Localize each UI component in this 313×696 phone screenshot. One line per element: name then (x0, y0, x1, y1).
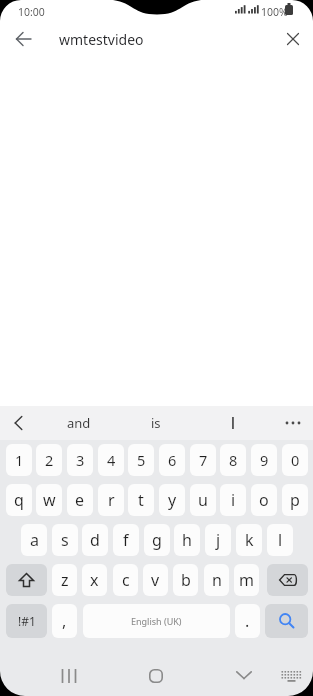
button[interactable]: e (67, 484, 93, 516)
staticText: . (245, 610, 250, 632)
staticText: 0 (291, 450, 300, 470)
button[interactable]: 4 (98, 444, 124, 476)
button[interactable]: 0 (282, 444, 308, 476)
button[interactable] (281, 671, 302, 683)
button[interactable]: 5 (128, 444, 154, 476)
staticText: 2 (45, 450, 54, 470)
staticText: 4 (107, 450, 116, 470)
button[interactable]: i (220, 484, 246, 516)
staticText: p (290, 489, 300, 511)
staticText: y (168, 489, 177, 511)
button[interactable]: o (251, 484, 277, 516)
staticText: q (14, 489, 24, 511)
button[interactable]: p (282, 484, 308, 516)
staticText: s (61, 529, 69, 551)
button[interactable]: j (205, 524, 231, 556)
staticText: w (43, 489, 56, 511)
button[interactable]: 2 (36, 444, 62, 476)
staticText: 8 (229, 450, 238, 470)
staticText: o (259, 489, 269, 511)
button[interactable]: a (21, 524, 47, 556)
staticText: x (90, 569, 99, 591)
button[interactable]: l (267, 524, 293, 556)
button[interactable]: h (174, 524, 200, 556)
staticText: 9 (260, 450, 269, 470)
button[interactable]: n (204, 564, 229, 596)
staticText: u (198, 489, 208, 511)
staticText: c (122, 569, 130, 591)
staticText: z (61, 569, 69, 591)
staticText: 1 (15, 450, 24, 470)
button[interactable]: wmtestvideo (0, 22, 313, 56)
button[interactable]: is (117, 406, 194, 440)
button[interactable]: d (82, 524, 108, 556)
button[interactable]: v (143, 564, 168, 596)
staticText: i (231, 489, 236, 511)
button[interactable]: q (6, 484, 32, 516)
staticText: a (30, 529, 39, 551)
staticText: 7 (199, 450, 208, 470)
staticText: is (151, 414, 161, 432)
staticText: j (216, 529, 221, 551)
staticText: 100% (261, 5, 288, 19)
button[interactable]: . (235, 604, 260, 638)
staticText: English (UK) (131, 615, 182, 627)
button[interactable]: 9 (251, 444, 277, 476)
button[interactable] (285, 420, 301, 426)
button[interactable]: , (52, 604, 77, 638)
button[interactable]: z (52, 564, 77, 596)
staticText: t (138, 489, 144, 511)
button[interactable]: c (113, 564, 138, 596)
button[interactable]: t (128, 484, 154, 516)
button[interactable] (287, 33, 299, 45)
button[interactable]: s (52, 524, 78, 556)
button[interactable]: w (36, 484, 62, 516)
button[interactable]: x (82, 564, 107, 596)
button[interactable]: b (173, 564, 198, 596)
staticText: 5 (137, 450, 146, 470)
button[interactable]: 6 (159, 444, 185, 476)
button[interactable] (61, 669, 77, 683)
staticText: l (278, 529, 283, 551)
button[interactable] (236, 671, 252, 680)
button[interactable]: k (236, 524, 262, 556)
staticText: wmtestvideo (59, 30, 144, 49)
staticText: d (90, 529, 100, 551)
button[interactable]: 8 (220, 444, 246, 476)
button[interactable] (265, 604, 308, 638)
button[interactable]: and (40, 406, 117, 440)
button[interactable]: f (113, 524, 139, 556)
staticText: 10:00 (18, 5, 45, 19)
staticText: f (123, 529, 129, 551)
button[interactable]: English (UK) (83, 604, 230, 638)
button[interactable]: m (234, 564, 259, 596)
button[interactable]: y (159, 484, 185, 516)
button[interactable] (6, 564, 47, 596)
staticText: h (182, 529, 192, 551)
staticText: k (245, 529, 254, 551)
staticText: n (212, 569, 222, 591)
button[interactable]: 7 (190, 444, 216, 476)
button[interactable]: r (98, 484, 124, 516)
button[interactable] (14, 416, 23, 430)
button[interactable]: !#1 (6, 604, 47, 638)
button[interactable]: 3 (67, 444, 93, 476)
staticText: e (75, 489, 85, 511)
staticText: 6 (168, 450, 177, 470)
staticText: v (151, 569, 160, 591)
button[interactable]: g (144, 524, 170, 556)
button[interactable]: 1 (6, 444, 32, 476)
button[interactable] (194, 406, 271, 440)
staticText: r (108, 489, 115, 511)
staticText: 3 (76, 450, 85, 470)
button[interactable] (267, 564, 308, 596)
button[interactable] (16, 32, 32, 46)
staticText: b (181, 569, 191, 591)
staticText: !#1 (18, 613, 36, 629)
staticText: and (67, 414, 91, 432)
staticText: , (62, 610, 67, 632)
staticText: m (239, 569, 254, 591)
button[interactable]: u (190, 484, 216, 516)
staticText: g (152, 529, 162, 551)
button[interactable] (149, 669, 163, 683)
